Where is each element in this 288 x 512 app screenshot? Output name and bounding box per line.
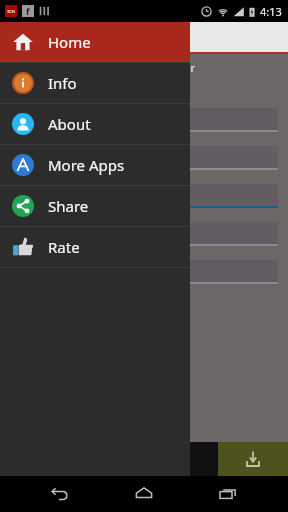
staticText: Home xyxy=(48,32,91,52)
button[interactable]: Home xyxy=(120,476,168,512)
button[interactable]: More Apps xyxy=(0,145,190,185)
staticText: Diet Calculator xyxy=(58,28,155,47)
button[interactable]: Rate xyxy=(0,227,190,267)
other: Open navigation drawer xyxy=(4,29,20,45)
staticText: Share xyxy=(48,196,89,216)
button[interactable]: Back xyxy=(36,476,84,512)
button[interactable]: Home xyxy=(0,22,190,62)
staticText: Info xyxy=(48,73,77,93)
staticText: More Apps xyxy=(48,155,125,175)
staticText: Enter your weight, height and other deta… xyxy=(10,60,195,90)
staticText: f xyxy=(26,5,30,17)
button[interactable]: Info xyxy=(0,63,190,103)
staticText: 4:13 xyxy=(260,4,282,19)
button[interactable]: Download xyxy=(218,442,288,476)
button[interactable]: Recent apps xyxy=(204,476,252,512)
button[interactable]: Share xyxy=(0,186,190,226)
staticText: TCH xyxy=(7,9,15,14)
staticText: Rate xyxy=(48,237,80,257)
staticText: About xyxy=(48,114,91,134)
button[interactable]: About xyxy=(0,104,190,144)
